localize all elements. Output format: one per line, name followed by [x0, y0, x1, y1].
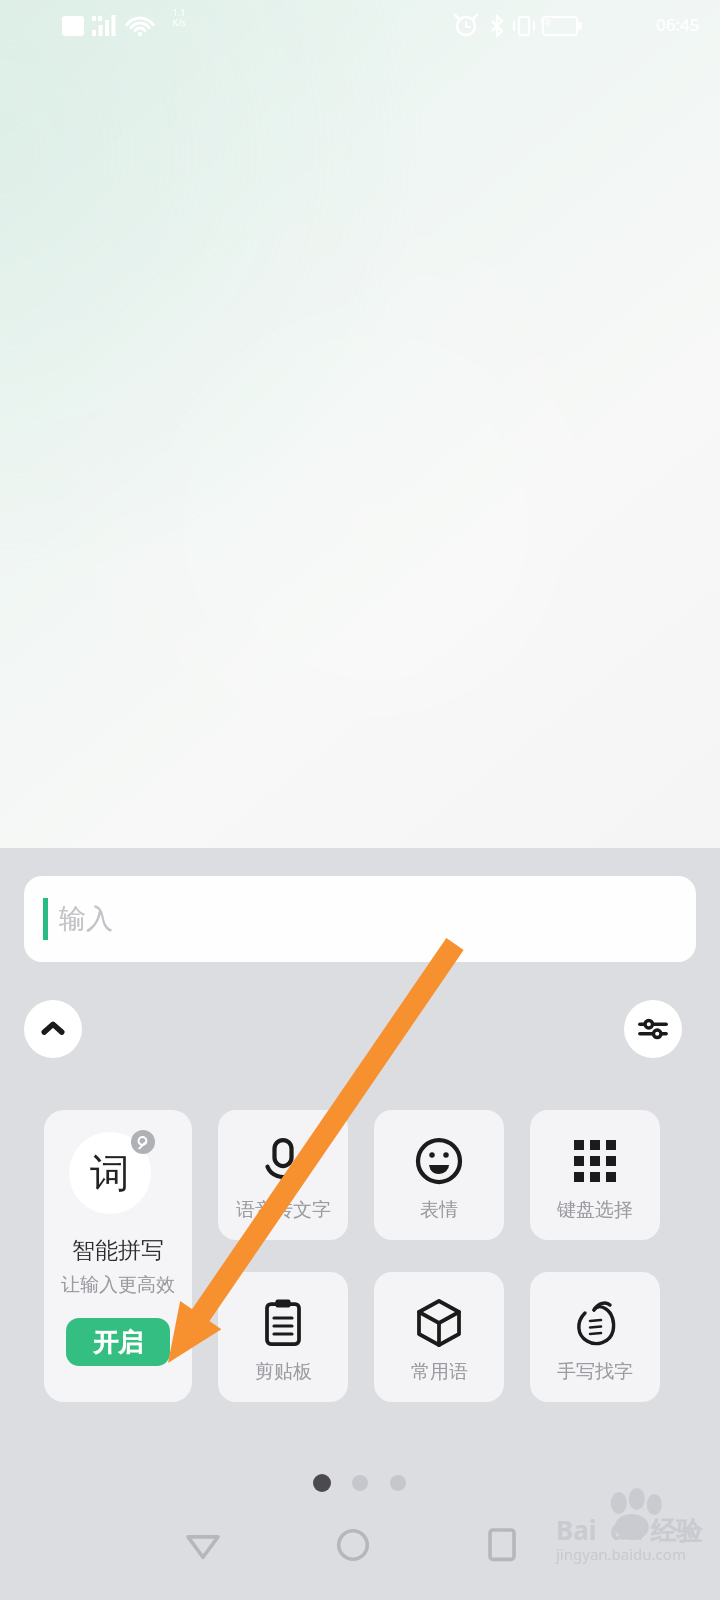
button[interactable]: 开启	[66, 1318, 170, 1366]
staticText: 1.1 K/s	[172, 6, 186, 28]
button[interactable]: Collapse keyboard	[24, 1000, 82, 1058]
button[interactable]: 常用语	[374, 1272, 504, 1402]
button[interactable]: 键盘选择	[530, 1110, 660, 1240]
button[interactable]: 表情	[374, 1110, 504, 1240]
staticText: 06:45	[656, 13, 700, 36]
button[interactable]: 剪贴板	[218, 1272, 348, 1402]
staticText: 语音转文字	[236, 1198, 331, 1222]
staticText: 词	[90, 1148, 130, 1198]
button[interactable]: 手写找字	[530, 1272, 660, 1402]
staticText: 常用语	[411, 1360, 468, 1384]
staticText: jingyan.baidu.com	[556, 1544, 686, 1564]
staticText: 手写找字	[557, 1360, 633, 1384]
staticText: 59	[540, 16, 551, 28]
button[interactable]: Back	[158, 1500, 248, 1590]
button[interactable]: Recent apps	[457, 1500, 547, 1590]
staticText: Bai du 经验	[556, 1512, 703, 1548]
staticText: 键盘选择	[557, 1198, 633, 1222]
button[interactable]: Settings	[624, 1000, 682, 1058]
staticText: 剪贴板	[255, 1360, 312, 1384]
staticText: 让输入更高效	[44, 1273, 192, 1297]
staticText: 智能拼写	[44, 1236, 192, 1265]
staticText: 开启	[93, 1327, 143, 1358]
staticText: 输入	[59, 902, 113, 936]
button[interactable]: Home	[308, 1500, 398, 1590]
button[interactable]: 语音转文字	[218, 1110, 348, 1240]
staticText: 表情	[420, 1198, 458, 1222]
button[interactable]: 词	[44, 1110, 192, 1402]
button[interactable]: 输入	[24, 876, 696, 962]
